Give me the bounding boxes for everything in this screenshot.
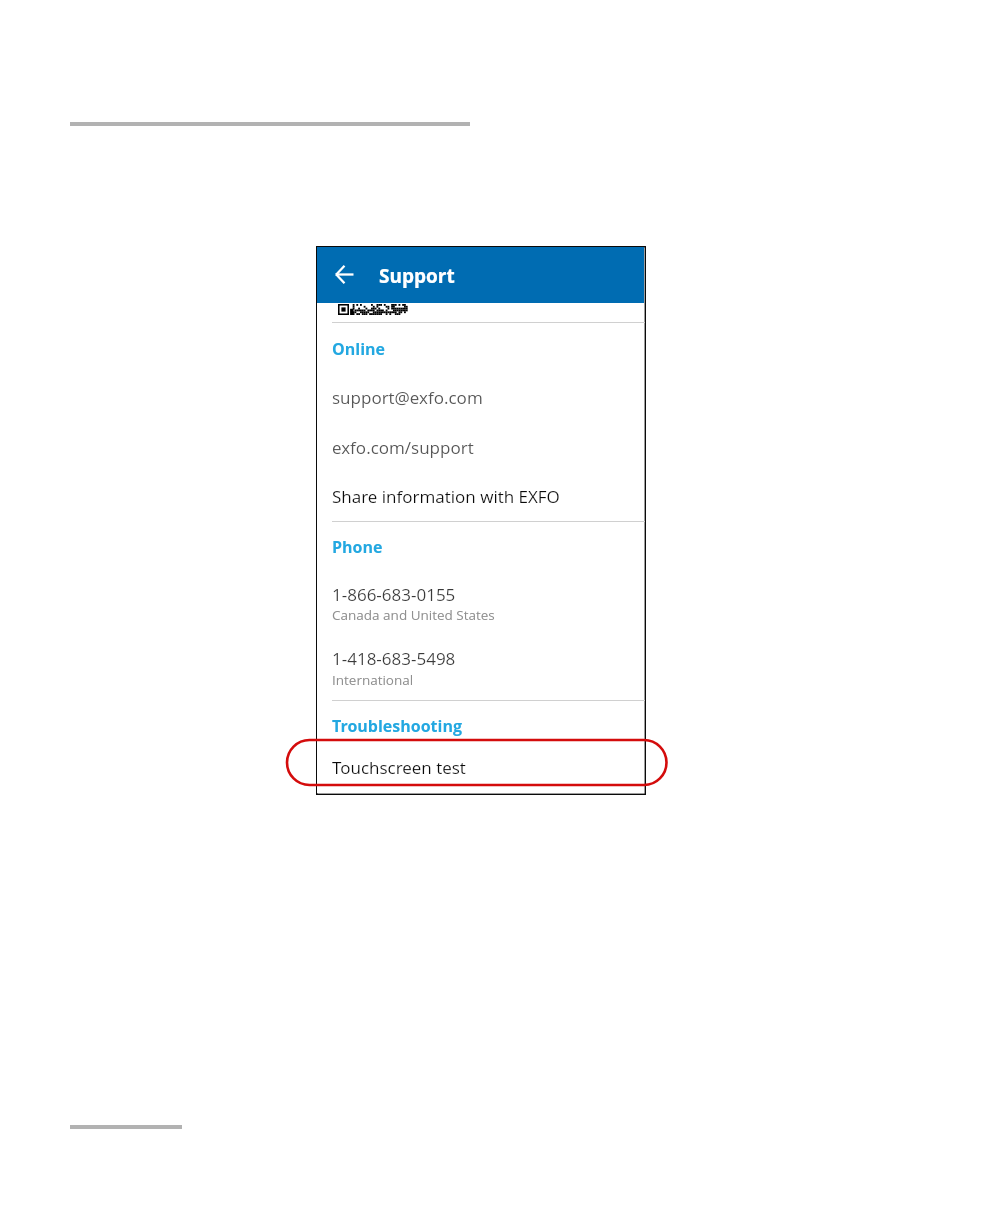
staticText: Support (379, 263, 455, 289)
button[interactable]: Touchscreen test (317, 744, 644, 794)
staticText: International (332, 671, 414, 689)
staticText: Online (332, 338, 385, 360)
staticText: Troubleshooting (332, 715, 462, 737)
button[interactable]: exfo.com/support (317, 421, 644, 471)
button[interactable]: Share information with EXFO (317, 471, 644, 521)
staticText: Phone (332, 536, 383, 558)
button[interactable]: 1-866-683-0155 (317, 570, 644, 633)
staticText: exfo.com/support (332, 436, 474, 459)
staticText: support@exfo.com (332, 386, 483, 409)
staticText: Touchscreen test (332, 756, 466, 779)
staticText: 1-866-683-0155 (332, 583, 456, 606)
staticText: 1-418-683-5498 (332, 647, 456, 670)
button[interactable]: support@exfo.com (317, 372, 644, 421)
button[interactable]: Back (330, 260, 359, 289)
staticText: Canada and United States (332, 606, 495, 624)
button[interactable]: 1-418-683-5498 (317, 633, 644, 700)
staticText: Share information with EXFO (332, 485, 560, 508)
